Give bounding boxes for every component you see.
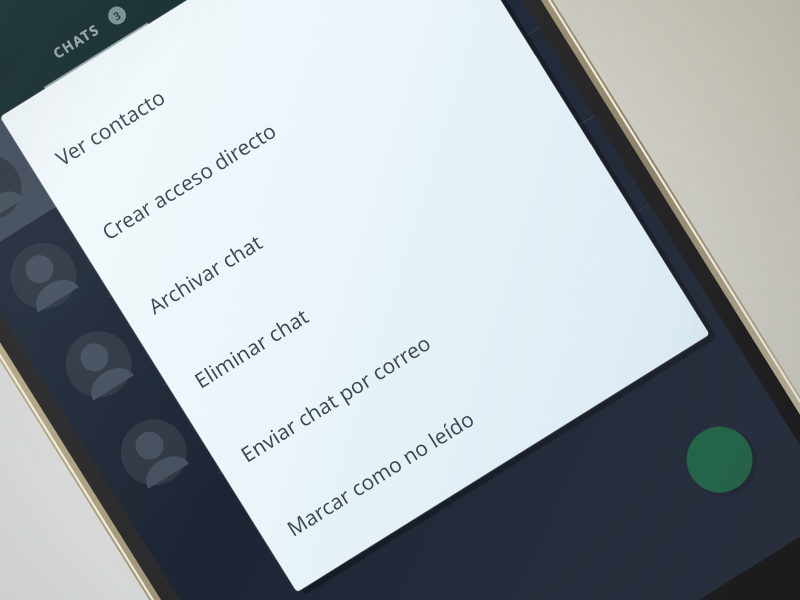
button[interactable]: WhatsApp chat context menu on a Samsung … — [0, 0, 800, 600]
